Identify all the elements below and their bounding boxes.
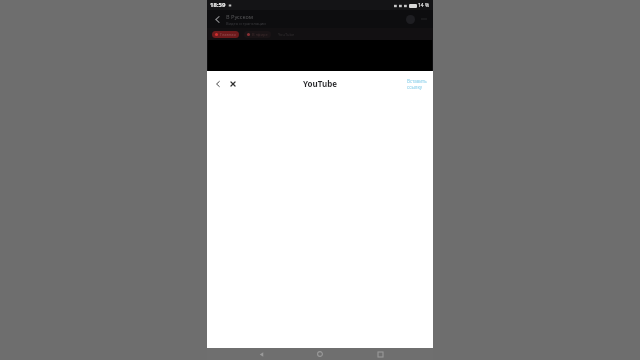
button[interactable]: Close bbox=[227, 78, 239, 90]
staticText: Вставить bbox=[407, 78, 427, 84]
button[interactable]: YouTube bbox=[276, 32, 297, 37]
staticText: 18:59 bbox=[210, 1, 226, 9]
staticText: ссылку bbox=[407, 84, 423, 90]
button[interactable]: Вставить bbox=[406, 78, 428, 90]
button[interactable]: Recents bbox=[374, 348, 386, 360]
button[interactable]: Главная bbox=[212, 31, 239, 38]
button[interactable]: Account bbox=[406, 15, 415, 24]
staticText: В эфире bbox=[252, 32, 268, 37]
staticText: YouTube bbox=[303, 78, 338, 89]
staticText: YouTube bbox=[278, 32, 295, 37]
button[interactable]: В эфире bbox=[244, 31, 271, 38]
button[interactable]: Back bbox=[255, 348, 267, 360]
staticText: Главная bbox=[220, 32, 236, 37]
button[interactable]: More options bbox=[419, 14, 429, 24]
button[interactable]: Back bbox=[212, 78, 224, 90]
staticText: В Русском bbox=[226, 13, 254, 20]
staticText: 14 % bbox=[418, 2, 430, 9]
button[interactable]: Home bbox=[314, 348, 326, 360]
staticText: Видео и трансляции bbox=[226, 21, 266, 26]
button[interactable]: Back bbox=[211, 13, 223, 25]
